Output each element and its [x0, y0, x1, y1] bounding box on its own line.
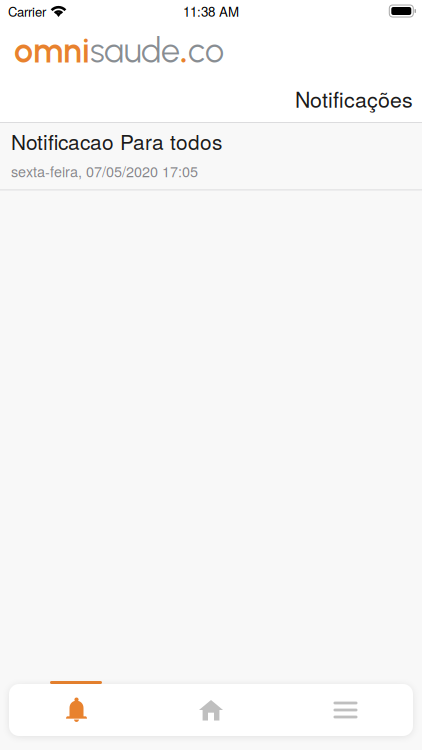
staticText: sexta-feira, 07/05/2020 17:05 [11, 161, 198, 181]
button[interactable]: Notificacao Para todos [0, 123, 422, 189]
staticText: Carrier [8, 2, 46, 20]
staticText: omni [14, 30, 90, 71]
button[interactable]: Notificações [9, 684, 144, 736]
staticText: Notificacao Para todos [11, 126, 222, 156]
staticText: saude [90, 30, 180, 71]
button[interactable]: Início [144, 684, 278, 736]
staticText: . [180, 30, 188, 71]
staticText: Notificações [295, 83, 413, 114]
staticText: co [188, 30, 224, 71]
button[interactable]: Menu [278, 684, 413, 736]
staticText: 11:38 AM [183, 1, 239, 21]
